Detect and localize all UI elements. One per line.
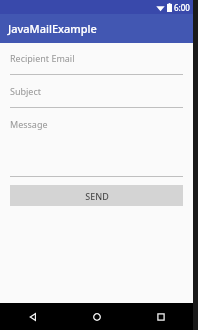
staticText: Subject [10, 85, 42, 97]
staticText: SEND [85, 190, 109, 202]
button[interactable]: Message [10, 118, 183, 130]
staticText: Message [10, 118, 48, 130]
staticText: JavaMailExample [8, 21, 97, 36]
staticText: 6:00 [174, 2, 190, 13]
button[interactable]: Recipient Email [10, 52, 183, 64]
button[interactable]: Home [65, 303, 129, 330]
button[interactable]: Subject [10, 85, 183, 97]
staticText: Recipient Email [10, 52, 75, 64]
button[interactable]: SEND [10, 185, 183, 206]
button[interactable]: Back [0, 303, 65, 330]
button[interactable]: Recent apps [129, 303, 193, 330]
